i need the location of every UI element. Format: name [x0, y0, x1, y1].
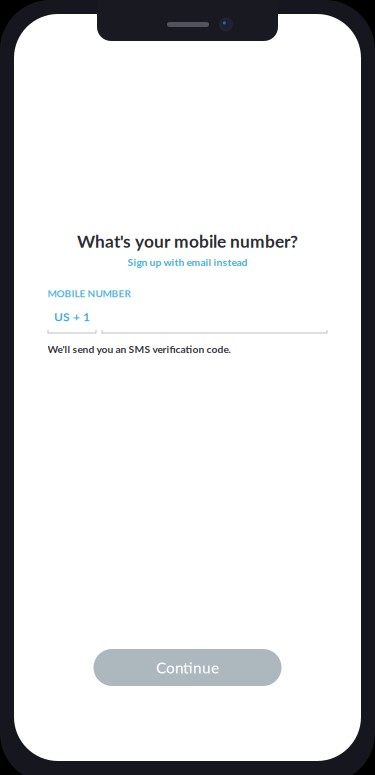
button[interactable]: Sign up with email instead — [127, 256, 247, 268]
button[interactable]: US + 1 — [47, 311, 96, 334]
staticText: MOBILE NUMBER — [47, 287, 130, 299]
staticText: Continue — [156, 658, 219, 677]
staticText: US + 1 — [54, 309, 90, 324]
button[interactable]: Continue — [93, 649, 281, 686]
staticText: What's your mobile number? — [77, 231, 298, 251]
button[interactable]: Phone number — [101, 311, 327, 334]
staticText: We'll send you an SMS verification code. — [47, 343, 230, 355]
staticText: Sign up with email instead — [127, 256, 247, 268]
